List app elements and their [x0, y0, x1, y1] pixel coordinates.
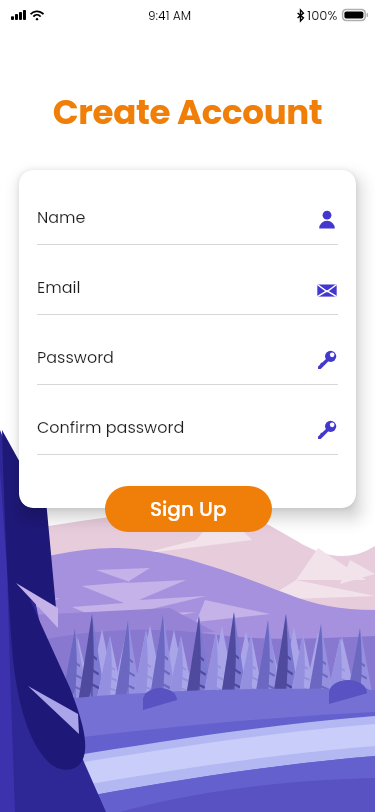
other: Bluetooth	[297, 10, 304, 21]
button[interactable]: Confirm password	[37, 406, 338, 454]
button[interactable]: Password	[37, 336, 338, 384]
staticText: Email	[37, 276, 316, 298]
staticText: Password	[37, 346, 316, 368]
staticText: Name	[37, 206, 316, 228]
other: Battery	[342, 9, 368, 21]
other: Wifi	[30, 10, 44, 20]
button[interactable]: Sign Up	[105, 486, 272, 532]
staticText: Create Account	[0, 88, 375, 136]
staticText: 100%	[307, 6, 338, 24]
button[interactable]: Email	[37, 266, 338, 314]
staticText: Confirm password	[37, 416, 316, 438]
staticText: Sign Up	[150, 495, 227, 523]
other: Signal	[11, 10, 26, 20]
staticText: 9:41 AM	[148, 7, 192, 24]
button[interactable]: Name	[37, 196, 338, 244]
